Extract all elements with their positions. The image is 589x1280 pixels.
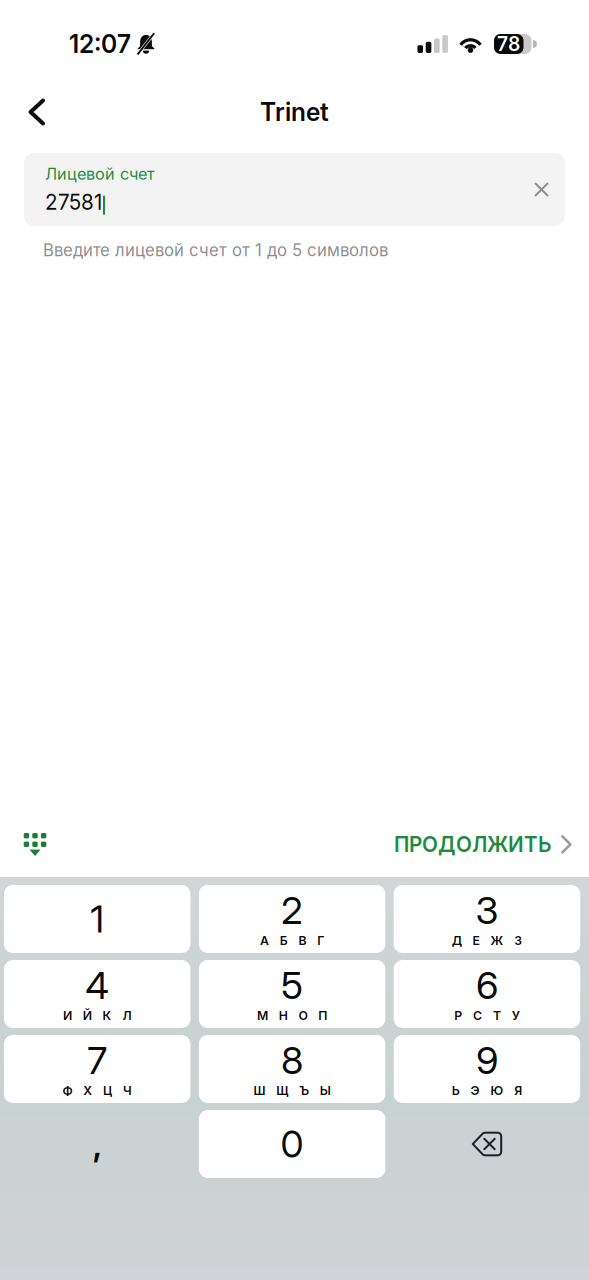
staticText: Л bbox=[122, 1008, 131, 1023]
staticText: 5 bbox=[281, 962, 303, 1008]
staticText: 12:07 bbox=[69, 29, 131, 59]
staticText: Введите лицевой счет от 1 до 5 символов bbox=[43, 240, 388, 260]
staticText: 2 bbox=[281, 887, 303, 933]
button[interactable]: Delete bbox=[394, 1110, 580, 1178]
button[interactable]: 3 bbox=[394, 885, 580, 953]
button[interactable]: 7 bbox=[4, 1035, 190, 1103]
button[interactable]: Back bbox=[0, 86, 78, 138]
staticText: Т bbox=[493, 1008, 501, 1023]
staticText: 27581 bbox=[45, 190, 102, 215]
staticText: М bbox=[257, 1008, 268, 1023]
staticText: Ф bbox=[62, 1083, 72, 1098]
button[interactable]: 0 bbox=[199, 1110, 385, 1178]
staticText: 6 bbox=[476, 962, 498, 1008]
staticText: А bbox=[260, 933, 269, 948]
staticText: Я bbox=[514, 1083, 522, 1098]
staticText: Э bbox=[471, 1083, 480, 1098]
staticText: Ж bbox=[490, 933, 503, 948]
staticText: Н bbox=[279, 1008, 288, 1023]
staticText: Лицевой счет bbox=[45, 164, 155, 184]
staticText: Trinet bbox=[260, 97, 329, 127]
button[interactable]: 1 bbox=[4, 885, 190, 953]
button[interactable]: ПРОДОЛЖИТЬ bbox=[394, 812, 589, 877]
staticText: Б bbox=[280, 933, 288, 948]
staticText: Ц bbox=[103, 1083, 112, 1098]
staticText: Г bbox=[317, 933, 324, 948]
staticText: Ъ bbox=[299, 1083, 309, 1098]
staticText: Ш bbox=[253, 1083, 265, 1098]
staticText: 8 bbox=[281, 1037, 303, 1083]
staticText: , bbox=[93, 1123, 102, 1165]
button[interactable]: Comma bbox=[4, 1110, 190, 1178]
staticText: В bbox=[298, 933, 306, 948]
staticText: Й bbox=[83, 1008, 92, 1023]
button[interactable]: 4 bbox=[4, 960, 190, 1028]
staticText: П bbox=[318, 1008, 327, 1023]
staticText: 9 bbox=[476, 1037, 498, 1083]
staticText: Е bbox=[473, 933, 480, 948]
button[interactable]: 2 bbox=[199, 885, 385, 953]
button[interactable]: 6 bbox=[394, 960, 580, 1028]
staticText: 1 bbox=[90, 896, 104, 942]
button[interactable]: 8 bbox=[199, 1035, 385, 1103]
staticText: Ы bbox=[320, 1083, 331, 1098]
staticText: 7 bbox=[87, 1037, 107, 1083]
staticText: Ь bbox=[452, 1083, 460, 1098]
staticText: Щ bbox=[276, 1083, 288, 1098]
staticText: С bbox=[473, 1008, 482, 1023]
staticText: Ю bbox=[490, 1083, 503, 1098]
staticText: У bbox=[512, 1008, 520, 1023]
staticText: Ч bbox=[123, 1083, 132, 1098]
button[interactable]: 9 bbox=[394, 1035, 580, 1103]
button[interactable]: Hide keyboard bbox=[0, 812, 72, 877]
staticText: Р bbox=[454, 1008, 462, 1023]
staticText: К bbox=[103, 1008, 112, 1023]
staticText: ПРОДОЛЖИТЬ bbox=[394, 832, 552, 857]
staticText: 4 bbox=[85, 962, 109, 1008]
staticText: З bbox=[514, 933, 522, 948]
button[interactable]: Clear bbox=[519, 167, 563, 211]
staticText: Х bbox=[83, 1083, 92, 1098]
staticText: И bbox=[63, 1008, 72, 1023]
staticText: Д bbox=[452, 933, 462, 948]
button[interactable]: 5 bbox=[199, 960, 385, 1028]
staticText: 78 bbox=[497, 32, 520, 56]
staticText: 0 bbox=[281, 1121, 304, 1167]
staticText: О bbox=[298, 1008, 307, 1023]
staticText: 3 bbox=[475, 887, 498, 933]
